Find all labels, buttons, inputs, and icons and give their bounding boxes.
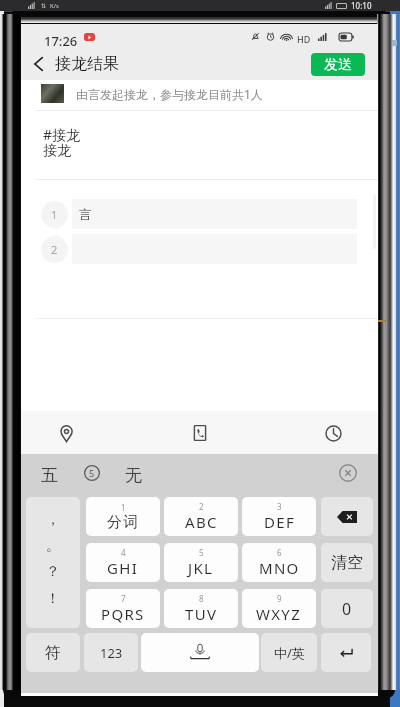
staticText: 中/英 — [274, 644, 305, 662]
button[interactable]: Contacts — [183, 416, 217, 450]
staticText: 接龙 — [43, 142, 71, 160]
button[interactable]: 6 — [242, 543, 316, 582]
staticText: 符 — [45, 643, 61, 663]
staticText: 发送 — [324, 56, 352, 74]
button[interactable]: Location — [49, 416, 83, 450]
staticText: 8 — [199, 593, 204, 604]
button[interactable]: 5 — [84, 465, 100, 481]
button[interactable]: 1 — [86, 497, 160, 536]
staticText: 6 — [277, 547, 282, 558]
button[interactable]: 5 — [164, 543, 238, 582]
staticText: WXYZ — [256, 604, 302, 624]
button[interactable]: 无 — [115, 459, 151, 491]
staticText: 由言发起接龙，参与接龙目前共1人 — [76, 86, 263, 102]
staticText: 17:26 — [44, 32, 78, 50]
staticText: 123 — [100, 644, 123, 662]
staticText: 10:10 — [351, 0, 372, 11]
button[interactable]: 8 — [164, 589, 238, 628]
staticText: ABC — [185, 512, 218, 532]
staticText: HD — [297, 33, 311, 45]
button[interactable]: ， — [26, 497, 80, 628]
staticText: 4 — [121, 547, 126, 558]
staticText: ？ — [46, 563, 60, 581]
staticText: 2 — [199, 501, 204, 512]
staticText: ， — [46, 511, 60, 529]
button[interactable]: 7 — [86, 589, 160, 628]
staticText: 。 — [46, 537, 60, 555]
button[interactable]: Back — [25, 51, 51, 77]
staticText: PQRS — [101, 604, 145, 624]
staticText: ⇅ — [41, 2, 47, 9]
button[interactable]: Voice input — [141, 633, 259, 672]
button[interactable]: 发送 — [311, 53, 365, 76]
button[interactable]: 3 — [242, 497, 316, 536]
button[interactable]: 9 — [242, 589, 316, 628]
staticText: 五 — [41, 465, 58, 486]
button[interactable]: 4 — [86, 543, 160, 582]
staticText: #接龙 — [43, 125, 81, 144]
staticText: 无 — [125, 465, 142, 486]
staticText: 接龙结果 — [55, 54, 119, 74]
staticText: 3 — [277, 501, 282, 512]
staticText: 言 — [79, 206, 92, 222]
staticText: 1 — [121, 502, 126, 513]
staticText: 0 — [342, 598, 352, 620]
staticText: 9 — [277, 593, 282, 604]
staticText: 1 — [51, 207, 58, 222]
button[interactable]: 2 — [41, 236, 68, 263]
staticText: ！ — [46, 590, 60, 608]
staticText: DEF — [264, 512, 295, 532]
button[interactable]: 0 — [321, 589, 373, 628]
staticText: K/s — [50, 2, 59, 10]
button[interactable]: Close keyboard — [338, 463, 358, 483]
staticText: MNO — [259, 558, 300, 578]
staticText: GHI — [107, 558, 139, 578]
button[interactable]: 123 — [84, 633, 138, 672]
button[interactable]: 1 — [41, 201, 68, 228]
staticText: 清空 — [331, 553, 363, 573]
button[interactable]: 中/英 — [261, 633, 317, 672]
staticText: 2 — [51, 242, 58, 257]
staticText: 5 — [89, 467, 95, 479]
button[interactable]: 符 — [26, 633, 80, 672]
staticText: 5 — [199, 547, 204, 558]
button[interactable]: 五 — [31, 459, 67, 491]
button[interactable]: Enter — [321, 633, 371, 672]
staticText: TUV — [185, 604, 218, 624]
button[interactable]: Backspace — [321, 497, 373, 536]
staticText: 分词 — [107, 513, 140, 532]
button[interactable]: 清空 — [321, 543, 373, 582]
staticText: 7 — [121, 593, 126, 604]
button[interactable]: 2 — [164, 497, 238, 536]
button[interactable]: 言 — [72, 199, 357, 229]
button[interactable]: Recent — [316, 416, 350, 450]
staticText: JKL — [188, 558, 214, 578]
